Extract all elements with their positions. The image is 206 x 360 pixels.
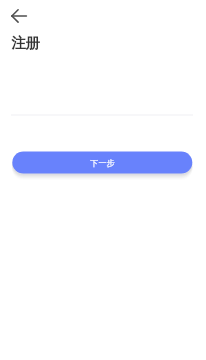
- staticText: 下一步: [90, 158, 115, 168]
- button[interactable]: 下一步: [12, 151, 193, 174]
- staticText: 注册: [11, 34, 41, 52]
- button[interactable]: Back: [2, 2, 36, 30]
